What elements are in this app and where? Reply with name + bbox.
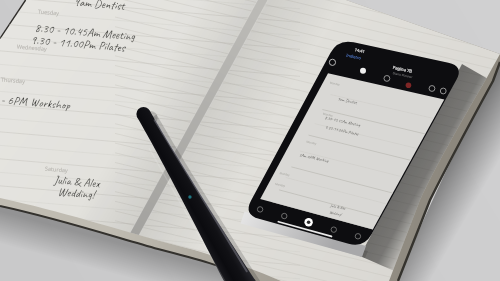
button[interactable]: Pen tool [298,214,320,232]
button[interactable]: Back [334,52,362,64]
